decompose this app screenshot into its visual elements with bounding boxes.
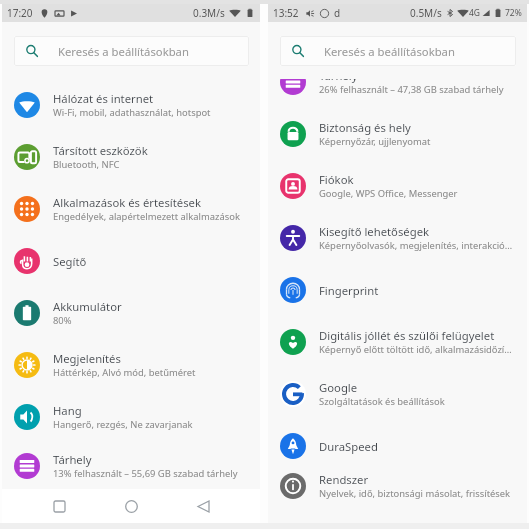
staticText: Fingerprint bbox=[319, 283, 379, 298]
button[interactable]: Alkalmazások és értesítések bbox=[2, 183, 260, 235]
staticText: 80% bbox=[53, 314, 72, 327]
staticText: Fiókok bbox=[319, 172, 354, 187]
staticText: 17:20 bbox=[7, 6, 33, 20]
staticText: Képernyőolvasók, megjelenítés, interakci… bbox=[319, 239, 513, 252]
staticText: Akkumulátor bbox=[53, 299, 122, 314]
staticText: Képernyőzár, ujjlenyomat bbox=[319, 135, 431, 148]
staticText: Keresés a beállításokban bbox=[324, 44, 455, 59]
staticText: Digitális jóllét és szülői felügyelet bbox=[319, 328, 495, 343]
button[interactable]: Keresés a beállításokban bbox=[280, 36, 516, 66]
staticText: 0.3M/s bbox=[193, 6, 225, 20]
staticText: Engedélyek, alapértelmezett alkalmazások bbox=[53, 210, 240, 223]
staticText: Tárhely bbox=[319, 79, 358, 83]
staticText: Társított eszközök bbox=[53, 143, 148, 158]
button[interactable]: Akkumulátor bbox=[2, 287, 260, 339]
button[interactable]: Digitális jóllét és szülői felügyelet bbox=[268, 316, 527, 368]
button[interactable]: Rendszer bbox=[268, 472, 527, 500]
staticText: 72% bbox=[505, 7, 522, 19]
staticText: Szolgáltatások és beállítások bbox=[319, 395, 445, 408]
button[interactable]: Hang bbox=[2, 391, 260, 443]
staticText: Hálózat és internet bbox=[53, 91, 154, 106]
button[interactable]: Keresés a beállításokban bbox=[14, 36, 249, 66]
staticText: d bbox=[334, 6, 341, 20]
button[interactable]: Back bbox=[188, 491, 218, 521]
button[interactable]: Kisegítő lehetőségek bbox=[268, 212, 527, 264]
staticText: Google, WPS Office, Messenger bbox=[319, 187, 458, 200]
staticText: Google bbox=[319, 380, 358, 395]
staticText: Segítő bbox=[53, 254, 87, 269]
staticText: Hang bbox=[53, 403, 82, 418]
staticText: Tárhely bbox=[53, 452, 92, 467]
staticText: Rendszer bbox=[319, 472, 369, 487]
button[interactable]: Biztonság és hely bbox=[268, 108, 527, 160]
staticText: 26% felhasznált – 47,38 GB szabad tárhel… bbox=[319, 83, 504, 96]
staticText: 4G bbox=[469, 7, 481, 19]
staticText: Megjelenítés bbox=[53, 351, 121, 366]
staticText: Alkalmazások és értesítések bbox=[53, 195, 201, 210]
staticText: 0.5M/s bbox=[410, 6, 442, 20]
staticText: DuraSpeed bbox=[319, 439, 378, 454]
button[interactable]: Segítő bbox=[2, 235, 260, 287]
button[interactable]: DuraSpeed bbox=[268, 420, 527, 472]
staticText: Keresés a beállításokban bbox=[58, 44, 189, 59]
button[interactable]: Társított eszközök bbox=[2, 131, 260, 183]
staticText: Biztonság és hely bbox=[319, 120, 411, 135]
button[interactable]: Tárhely bbox=[268, 79, 527, 108]
button[interactable]: Google bbox=[268, 368, 527, 420]
staticText: Kisegítő lehetőségek bbox=[319, 224, 430, 239]
staticText: Wi-Fi, mobil, adathasználat, hotspot bbox=[53, 106, 211, 119]
button[interactable]: Fiókok bbox=[268, 160, 527, 212]
button[interactable]: Fingerprint bbox=[268, 264, 527, 316]
staticText: Háttérkép, Alvó mód, betűméret bbox=[53, 366, 196, 379]
staticText: Nyelvek, idő, biztonsági másolat, frissí… bbox=[319, 487, 511, 500]
button[interactable]: Home bbox=[116, 491, 146, 521]
staticText: Bluetooth, NFC bbox=[53, 158, 120, 171]
staticText: Hangerő, rezgés, Ne zavarjanak bbox=[53, 418, 193, 431]
button[interactable]: Hálózat és internet bbox=[2, 79, 260, 131]
button[interactable]: Tárhely bbox=[2, 443, 260, 489]
button[interactable]: Recents bbox=[44, 491, 74, 521]
staticText: 13:52 bbox=[273, 6, 299, 20]
button[interactable]: Megjelenítés bbox=[2, 339, 260, 391]
staticText: 13% felhasznált – 55,69 GB szabad tárhel… bbox=[53, 467, 238, 480]
staticText: Képernyő előtt töltött idő, alkalmazásid… bbox=[319, 343, 512, 356]
